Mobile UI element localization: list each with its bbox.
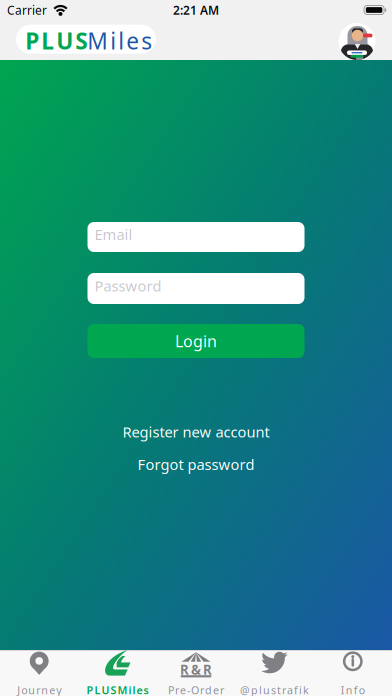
staticText: P L U S M i l e s <box>87 683 149 696</box>
button[interactable]: P L U S M i l e s <box>78 651 157 696</box>
staticText: Password <box>94 276 161 295</box>
staticText: M i l e s <box>87 26 152 56</box>
button[interactable]: Profile <box>338 23 375 60</box>
button[interactable]: Register new account <box>122 422 269 441</box>
staticText: R & R <box>180 661 212 678</box>
staticText: Register new account <box>122 422 269 441</box>
button[interactable]: R & R <box>157 651 235 696</box>
button[interactable]: Login <box>87 324 304 358</box>
staticText: Email <box>94 224 132 244</box>
staticText: P r e - O r d e r <box>168 683 224 696</box>
staticText: J o u r n e y <box>17 683 61 696</box>
staticText: @ p l u s t r a f i k <box>240 683 309 696</box>
button[interactable]: I n f o <box>314 651 392 696</box>
button[interactable]: @ p l u s t r a f i k <box>235 651 314 696</box>
staticText: Carrier <box>7 2 47 18</box>
staticText: 2:21 AM <box>173 2 219 18</box>
staticText: Forgot password <box>137 454 254 474</box>
staticText: I n f o <box>341 683 365 696</box>
button[interactable]: J o u r n e y <box>0 651 78 696</box>
staticText: Login <box>175 330 217 352</box>
staticText: P L U S <box>25 26 87 56</box>
button[interactable]: Forgot password <box>137 454 254 474</box>
